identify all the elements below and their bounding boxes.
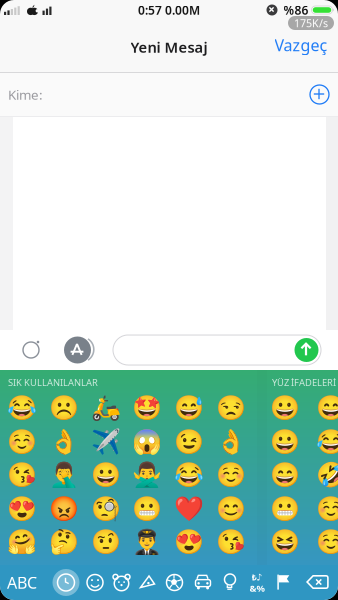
button[interactable]: 😘 [216, 528, 246, 556]
button[interactable]: 👨‍✈️ [132, 528, 162, 556]
staticText: 😂 [316, 428, 338, 455]
staticText: 😀 [91, 461, 121, 489]
staticText: 😂 [7, 394, 37, 422]
button[interactable]: 👌 [49, 428, 79, 455]
staticText: ☹️ [49, 394, 79, 422]
button[interactable]: 👌 [216, 428, 246, 455]
staticText: 👌 [216, 428, 246, 455]
button[interactable]: 😡 [49, 495, 79, 522]
staticText: 175K/s [294, 16, 328, 30]
staticText: ☺️ [7, 428, 37, 455]
button[interactable]: 🤣 [316, 461, 338, 489]
button[interactable]: Spor [161, 565, 187, 600]
button[interactable]: 😬 [132, 495, 162, 522]
button[interactable]: 😊 [216, 495, 246, 522]
button[interactable]: 😅 [174, 394, 204, 422]
button[interactable]: ❤️ [174, 495, 204, 522]
button[interactable]: 🧐 [91, 495, 121, 522]
staticText: 😱 [132, 428, 162, 455]
button[interactable]: Yüzler [82, 565, 108, 600]
staticText: 😍 [7, 495, 37, 522]
staticText: 😘 [7, 461, 37, 489]
staticText: 🤦‍♂️ [49, 461, 79, 489]
staticText: ☺️ [316, 528, 338, 556]
button[interactable]: 😒 [216, 394, 246, 422]
staticText: 🤨 [91, 528, 121, 556]
staticText: 😬 [270, 495, 300, 522]
staticText: 🛵 [91, 394, 121, 422]
button[interactable]: Araçlar [189, 565, 217, 600]
staticText: 0:57 0.00M [138, 2, 200, 18]
button[interactable]: 🙅‍♂️ [132, 461, 162, 489]
button[interactable]: Bayraklar [271, 565, 297, 600]
staticText: &% [249, 582, 264, 594]
button[interactable]: 😀 [91, 461, 121, 489]
staticText: Yeni Mesaj [130, 37, 207, 57]
staticText: ☺️ [216, 461, 246, 489]
staticText: 😒 [216, 394, 246, 422]
button[interactable]: Son kullanılanlar [51, 565, 81, 600]
staticText: 😆 [270, 528, 300, 556]
button[interactable]: 😂 [7, 394, 37, 422]
staticText: 🤩 [132, 394, 162, 422]
button[interactable]: Semboller [244, 565, 270, 600]
button[interactable]: 😅 [316, 394, 338, 422]
staticText: 😄 [270, 461, 300, 489]
button[interactable]: 🤗 [7, 528, 37, 556]
button[interactable]: ☺️ [316, 528, 338, 556]
button[interactable]: Kamera [0, 341, 41, 359]
button[interactable]: Gönder [294, 338, 318, 362]
button[interactable]: 😂 [316, 428, 338, 455]
staticText: 😍 [174, 528, 204, 556]
staticText: SIK KULLANILANLAR [8, 376, 98, 389]
button[interactable]: ☹️ [49, 394, 79, 422]
button[interactable]: 😱 [132, 428, 162, 455]
button[interactable]: Uygulamalar [41, 336, 94, 363]
button[interactable]: 🤦‍♂️ [49, 461, 79, 489]
staticText: 😅 [316, 394, 338, 422]
button[interactable]: 😆 [270, 528, 300, 556]
button[interactable]: Vazgeç [274, 34, 327, 56]
staticText: 😘 [216, 528, 246, 556]
staticText: 😉 [174, 428, 204, 455]
button[interactable]: ABC klavye [5, 565, 39, 600]
button[interactable]: Kişi Ekle [310, 85, 329, 104]
button[interactable]: 🤔 [49, 528, 79, 556]
button[interactable]: 🤨 [91, 528, 121, 556]
button[interactable]: 🛵 [91, 394, 121, 422]
button[interactable]: ☺️ [216, 461, 246, 489]
button[interactable]: 😀 [270, 394, 300, 422]
button[interactable]: Yiyecek [135, 565, 161, 600]
staticText: 🤔 [49, 528, 79, 556]
staticText: Kime: [8, 86, 43, 103]
button[interactable]: 😍 [174, 528, 204, 556]
button[interactable]: ☺️ [316, 495, 338, 522]
button[interactable]: 😘 [7, 461, 37, 489]
button[interactable]: 😀 [270, 428, 300, 455]
button[interactable]: ✈️ [91, 428, 121, 455]
staticText: ✈️ [91, 428, 121, 455]
button[interactable]: 😉 [174, 428, 204, 455]
staticText: 😂 [174, 461, 204, 489]
staticText: ABC [7, 572, 37, 593]
button[interactable]: Sil [301, 565, 335, 600]
staticText: ₺♪ [251, 571, 262, 583]
button[interactable]: Hayvanlar [108, 565, 134, 600]
staticText: 👌 [49, 428, 79, 455]
button[interactable]: 😍 [7, 495, 37, 522]
staticText: 🧐 [91, 495, 121, 522]
staticText: Vazgeç [274, 34, 327, 56]
button[interactable]: 😬 [270, 495, 300, 522]
staticText: 👨‍✈️ [132, 528, 162, 556]
button[interactable]: 🤩 [132, 394, 162, 422]
staticText: 🤗 [7, 528, 37, 556]
button[interactable]: ☺️ [7, 428, 37, 455]
staticText: %86 [283, 2, 308, 18]
button[interactable]: Nesneler [217, 565, 243, 600]
staticText: 😬 [132, 495, 162, 522]
staticText: YÜZ İFADELERİ [272, 376, 336, 389]
staticText: 😊 [216, 495, 246, 522]
button[interactable]: 😄 [270, 461, 300, 489]
staticText: 😅 [174, 394, 204, 422]
button[interactable]: 😂 [174, 461, 204, 489]
